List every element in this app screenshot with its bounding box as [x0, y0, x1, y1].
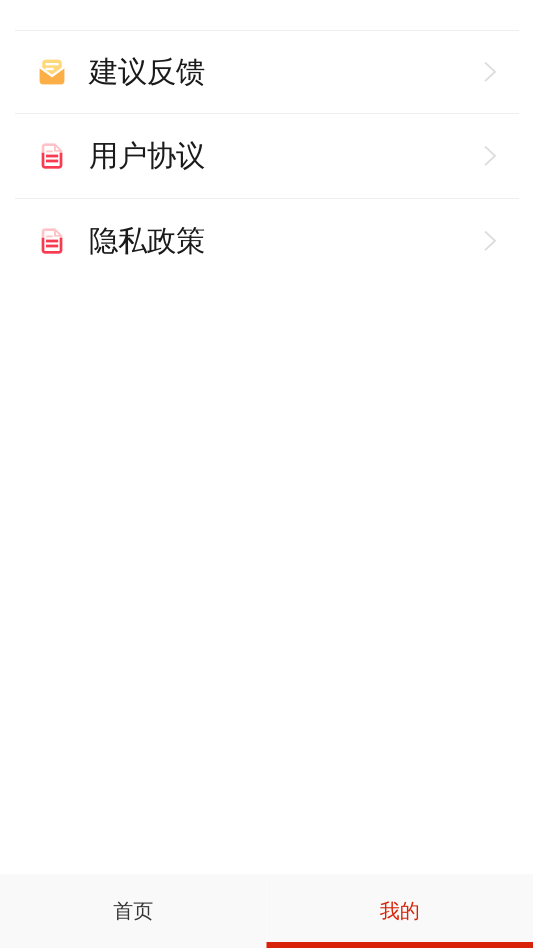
staticText: 我的: [380, 899, 420, 923]
button[interactable]: 首页: [0, 874, 266, 948]
button[interactable]: 我的: [266, 874, 533, 948]
button[interactable]: 建议反馈: [0, 31, 533, 113]
staticText: 隐私政策: [89, 223, 205, 259]
staticText: 用户协议: [89, 138, 205, 174]
button[interactable]: 隐私政策: [0, 199, 533, 283]
staticText: 首页: [113, 899, 153, 923]
button[interactable]: 用户协议: [0, 114, 533, 198]
staticText: 建议反馈: [89, 54, 205, 90]
